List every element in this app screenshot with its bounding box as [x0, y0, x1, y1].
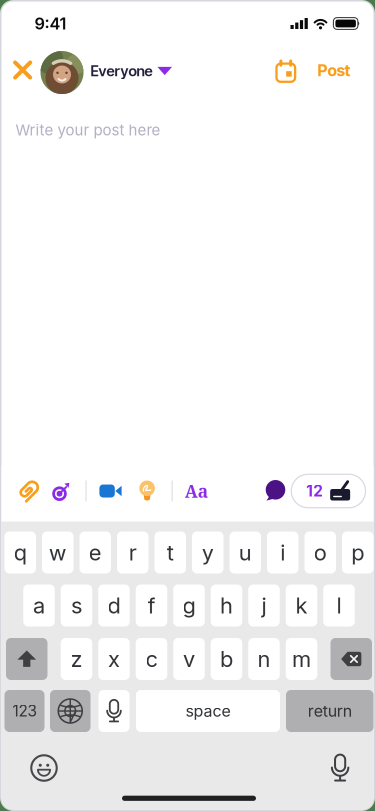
button[interactable]: x	[98, 638, 130, 680]
button[interactable]: Celebrate	[52, 481, 70, 501]
button[interactable]: v	[173, 638, 205, 680]
staticText: p	[351, 539, 364, 566]
button[interactable]: Attach file	[15, 478, 41, 504]
button[interactable]: a	[23, 584, 55, 626]
button[interactable]: return	[286, 690, 373, 732]
staticText: h	[220, 592, 233, 619]
button[interactable]: Ideas	[137, 480, 157, 501]
staticText: d	[107, 592, 120, 619]
staticText: c	[145, 646, 157, 672]
staticText: 12	[306, 482, 323, 500]
button[interactable]: f	[136, 584, 167, 626]
staticText: Aa	[185, 479, 208, 503]
staticText: 123	[12, 702, 36, 720]
button[interactable]: Profile	[40, 51, 83, 94]
staticText: j	[261, 592, 266, 619]
staticText: v	[183, 646, 195, 672]
button[interactable]: k	[286, 584, 317, 626]
button[interactable]: w	[42, 531, 73, 573]
button[interactable]: r	[117, 531, 148, 573]
button[interactable]: y	[192, 531, 223, 573]
staticText: 9:41	[34, 14, 66, 33]
button[interactable]: q	[4, 531, 36, 573]
button[interactable]: Dictate	[98, 690, 129, 732]
button[interactable]: s	[61, 584, 92, 626]
button[interactable]: o	[304, 531, 336, 573]
button[interactable]: t	[154, 531, 186, 573]
button[interactable]: Next keyboard	[50, 690, 90, 732]
staticText: b	[220, 646, 233, 672]
staticText: y	[202, 539, 214, 566]
button[interactable]: Shift	[6, 638, 47, 680]
button[interactable]: g	[173, 584, 205, 626]
staticText: k	[295, 592, 307, 619]
button[interactable]: u	[229, 531, 261, 573]
button[interactable]: Delete	[330, 638, 372, 680]
staticText: o	[314, 539, 327, 566]
button[interactable]: Record video	[99, 484, 122, 497]
staticText: l	[336, 592, 341, 619]
staticText: f	[147, 592, 155, 619]
button[interactable]: Comments	[265, 480, 285, 502]
button[interactable]: i	[267, 531, 298, 573]
button[interactable]: n	[248, 638, 280, 680]
staticText: r	[129, 539, 137, 566]
button[interactable]: Close	[14, 64, 31, 81]
staticText: s	[71, 592, 82, 619]
button[interactable]: Drafts	[291, 474, 365, 508]
button[interactable]: Post	[317, 63, 350, 82]
staticText: u	[239, 539, 252, 566]
staticText: m	[292, 646, 311, 672]
button[interactable]: c	[136, 638, 167, 680]
button[interactable]: Dictation	[328, 754, 352, 782]
staticText: t	[167, 539, 174, 566]
staticText: g	[182, 592, 195, 619]
staticText: return	[308, 701, 352, 721]
button[interactable]: Everyone	[90, 64, 172, 81]
staticText: space	[185, 701, 230, 721]
button[interactable]: p	[342, 531, 373, 573]
button[interactable]: j	[248, 584, 280, 626]
staticText: Everyone	[90, 62, 152, 80]
button[interactable]: Emoji	[30, 754, 57, 781]
button[interactable]: Text style	[185, 479, 208, 503]
staticText: n	[257, 646, 270, 672]
staticText: z	[70, 646, 82, 672]
button[interactable]: Schedule post	[275, 60, 296, 84]
staticText: Write your post here	[15, 121, 160, 139]
staticText: x	[108, 646, 120, 672]
staticText: q	[14, 539, 27, 566]
staticText: Post	[317, 61, 350, 80]
button[interactable]: h	[211, 584, 242, 626]
button[interactable]: l	[323, 584, 355, 626]
staticText: w	[49, 539, 67, 566]
button[interactable]: 123	[4, 690, 44, 732]
staticText: i	[280, 539, 285, 566]
staticText: e	[89, 539, 102, 566]
button[interactable]: z	[61, 638, 92, 680]
button[interactable]: e	[79, 531, 111, 573]
button[interactable]: b	[211, 638, 242, 680]
staticText: a	[33, 592, 45, 619]
button[interactable]: d	[98, 584, 130, 626]
button[interactable]: m	[286, 638, 317, 680]
button[interactable]: space	[136, 690, 280, 732]
